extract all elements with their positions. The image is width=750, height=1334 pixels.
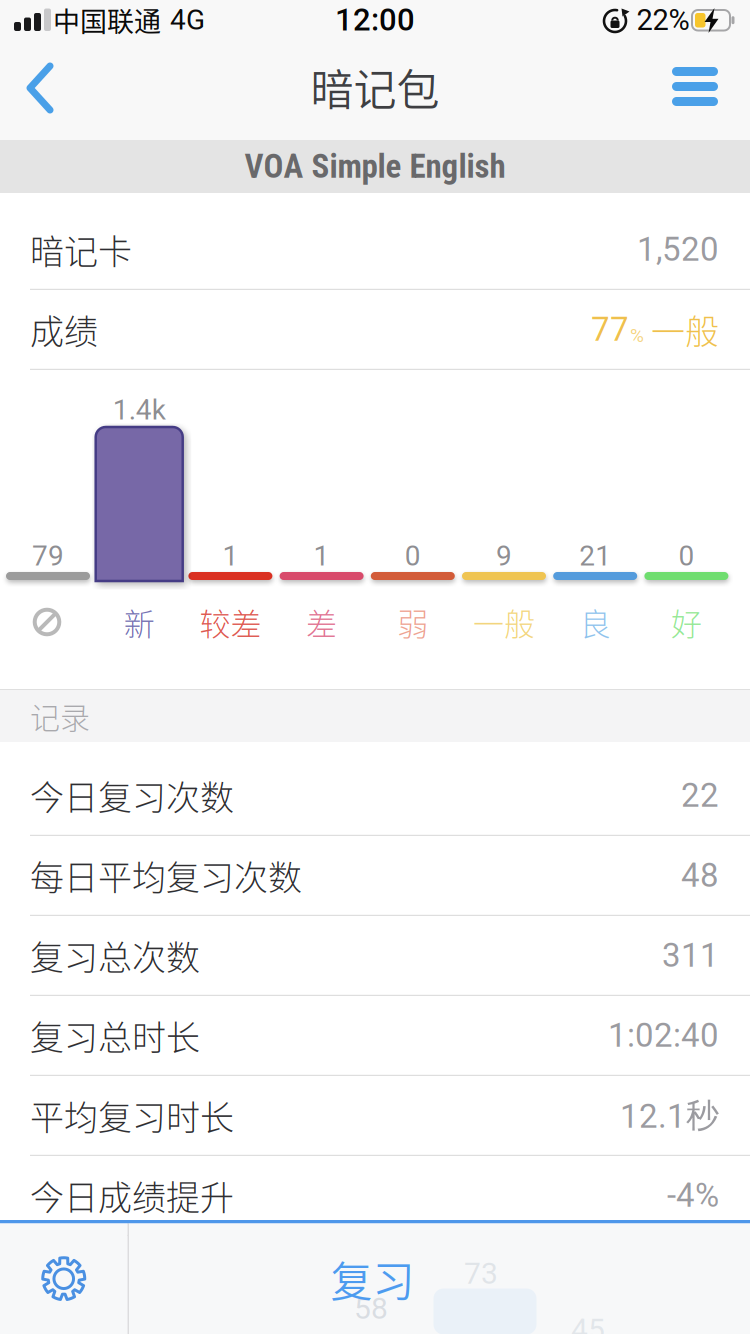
staticText: 1,520 — [637, 230, 719, 269]
staticText: 每日平均复习次数 — [30, 851, 302, 900]
staticText: 差 — [306, 600, 337, 644]
staticText: 45 — [571, 1312, 605, 1334]
staticText: 复习总次数 — [30, 931, 200, 980]
staticText: 12.1秒 — [620, 1095, 719, 1136]
staticText: 记录 — [30, 694, 90, 738]
staticText: 弱 — [397, 600, 428, 644]
staticText: 12:00 — [335, 2, 415, 38]
staticText: 21 — [579, 540, 611, 572]
staticText: 1 — [314, 540, 330, 572]
staticText: 22 — [681, 776, 719, 815]
staticText: 好 — [671, 600, 702, 644]
staticText: 79 — [32, 540, 64, 572]
staticText: 22% — [636, 3, 689, 37]
staticText: 暗记包 — [310, 56, 439, 118]
staticText: 复习 — [330, 1248, 414, 1309]
staticText: 暗记卡 — [30, 225, 132, 274]
button[interactable] — [650, 40, 740, 140]
staticText: 1 — [222, 540, 238, 572]
staticText: 中国联通 — [53, 0, 161, 40]
staticText: 4G — [170, 4, 205, 36]
staticText: 成绩 — [30, 305, 98, 354]
staticText: 311 — [662, 936, 719, 975]
staticText: 新 — [124, 600, 155, 644]
button[interactable] — [0, 40, 90, 140]
staticText: 48 — [681, 856, 719, 895]
staticText: -4% — [667, 1176, 719, 1215]
staticText: 良 — [580, 600, 611, 644]
staticText: 一般 — [473, 600, 535, 644]
staticText: 复习总时长 — [30, 1011, 200, 1060]
staticText: 1.4k — [113, 394, 166, 426]
button[interactable] — [0, 1223, 127, 1334]
staticText: 平均复习时长 — [30, 1091, 234, 1140]
staticText: 73 — [464, 1256, 498, 1291]
staticText: 较差 — [199, 600, 261, 644]
button[interactable]: 73 — [129, 1223, 750, 1334]
staticText: 一般 — [651, 305, 719, 354]
staticText: 58 — [354, 1291, 388, 1326]
staticText: 今日成绩提升 — [30, 1171, 234, 1220]
staticText: 9 — [496, 540, 512, 572]
staticText: % — [630, 324, 644, 347]
staticText: 今日复习次数 — [30, 771, 234, 820]
staticText: 0 — [405, 540, 421, 572]
staticText: 1:02:40 — [608, 1016, 719, 1055]
staticText: 77 — [591, 310, 629, 349]
staticText: VOA Simple English — [244, 147, 505, 186]
staticText: 0 — [678, 540, 694, 572]
